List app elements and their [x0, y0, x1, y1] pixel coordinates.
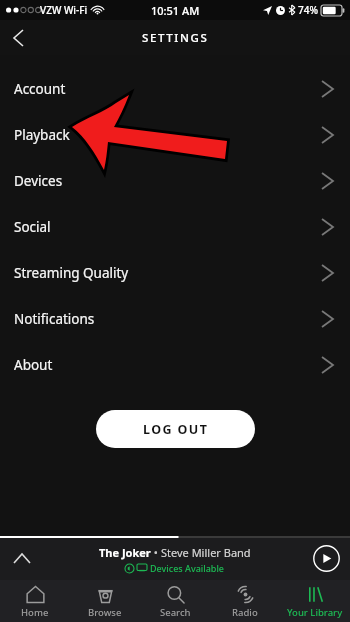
staticText: Home: [21, 606, 49, 619]
staticText: Browse: [88, 606, 122, 619]
button[interactable]: Devices: [0, 158, 350, 204]
button[interactable]: Notifications: [0, 296, 350, 342]
staticText: 74%: [298, 3, 318, 17]
staticText: Radio: [232, 606, 258, 619]
staticText: The Joker: [99, 545, 151, 560]
button[interactable]: Streaming Quality: [0, 250, 350, 296]
button[interactable]: About: [0, 342, 350, 388]
button[interactable]: Home: [0, 580, 70, 619]
staticText: Search: [160, 606, 191, 619]
staticText: Devices Available: [150, 562, 225, 574]
staticText: Social: [14, 218, 51, 236]
button[interactable]: Social: [0, 204, 350, 250]
button[interactable]: Expand: [0, 536, 44, 580]
button[interactable]: LOG OUT: [96, 410, 255, 448]
staticText: About: [14, 356, 53, 374]
staticText: LOG OUT: [143, 421, 209, 438]
staticText: Your Library: [287, 606, 343, 619]
staticText: Account: [14, 80, 66, 98]
button[interactable]: Your Library: [280, 580, 350, 619]
button[interactable]: Radio: [210, 580, 280, 619]
staticText: Steve Miller Band: [161, 545, 251, 560]
staticText: 10:51 AM: [151, 3, 200, 18]
button[interactable]: Back: [0, 20, 36, 55]
staticText: Notifications: [14, 310, 95, 328]
staticText: •: [151, 545, 161, 560]
button[interactable]: Browse: [70, 580, 140, 619]
staticText: Devices: [14, 172, 63, 190]
button[interactable]: Search: [140, 580, 210, 619]
button[interactable]: Account: [0, 66, 350, 112]
button[interactable]: Playback: [0, 112, 350, 158]
button[interactable]: Play: [313, 545, 340, 572]
staticText: Playback: [14, 126, 70, 144]
staticText: SETTINGS: [142, 30, 209, 46]
staticText: VZW Wi-Fi: [40, 3, 88, 17]
staticText: Streaming Quality: [14, 264, 129, 282]
